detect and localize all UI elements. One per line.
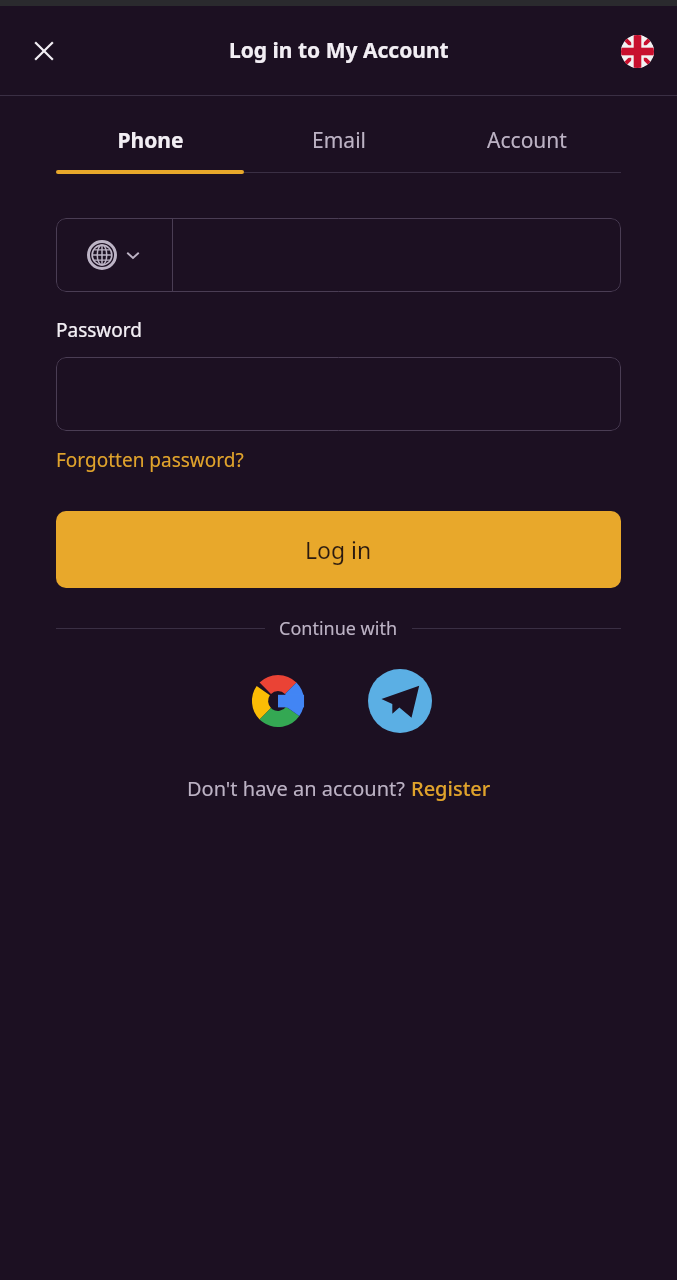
staticText: Don't have an account?	[187, 775, 411, 802]
button[interactable]: Phone	[56, 122, 245, 159]
button[interactable]: Account	[433, 122, 621, 159]
button[interactable]: Log in	[56, 511, 621, 588]
staticText: Password	[56, 317, 142, 343]
staticText: Log in	[305, 534, 372, 565]
staticText: Log in to My Account	[229, 36, 449, 65]
button[interactable]: Phone number	[173, 218, 621, 292]
button[interactable]: Register	[411, 775, 491, 802]
button[interactable]: Continue with Google	[246, 669, 310, 733]
staticText: Register	[411, 775, 491, 802]
button[interactable]: Select country code	[56, 218, 172, 292]
staticText: Email	[312, 126, 366, 155]
button[interactable]: Email	[245, 122, 433, 159]
staticText: Phone	[117, 126, 184, 155]
button[interactable]: Close	[16, 23, 72, 79]
button[interactable]: Forgotten password?	[56, 447, 244, 473]
staticText: Continue with	[279, 616, 398, 641]
staticText: Account	[487, 126, 567, 155]
staticText: Forgotten password?	[56, 447, 244, 473]
button[interactable]: Password	[56, 357, 621, 431]
button[interactable]: Continue with Telegram	[368, 669, 432, 733]
button[interactable]: Change language	[613, 27, 661, 75]
